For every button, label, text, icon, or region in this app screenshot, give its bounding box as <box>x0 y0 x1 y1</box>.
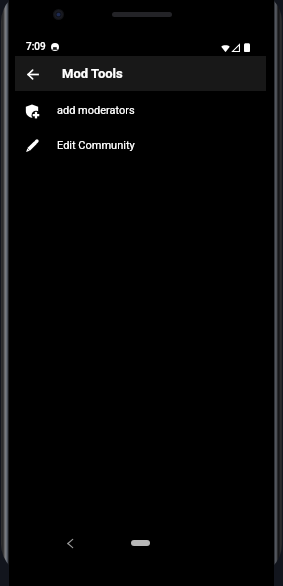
staticText: Edit Community <box>57 139 135 152</box>
button[interactable]: Edit Community <box>15 128 266 163</box>
staticText: Mod Tools <box>62 66 123 81</box>
staticText: 7:09 <box>26 41 46 53</box>
button[interactable]: Back <box>15 56 50 91</box>
button[interactable]: Back <box>61 534 79 552</box>
staticText: add moderators <box>57 104 135 117</box>
button[interactable]: add moderators <box>15 93 266 128</box>
button[interactable]: Home <box>131 540 150 546</box>
